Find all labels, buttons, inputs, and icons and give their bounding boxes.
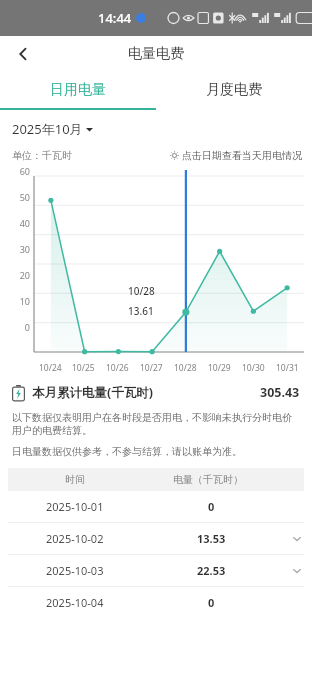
staticText: 点击日期查看当天用电情况 xyxy=(182,149,302,162)
staticText: 13.61 xyxy=(128,304,154,318)
staticText: 10/28 xyxy=(174,362,197,374)
staticText: 单位：千瓦时 xyxy=(12,149,72,162)
staticText: 10 xyxy=(19,295,30,307)
staticText: 22.53 xyxy=(197,563,226,578)
staticText: 40 xyxy=(19,217,30,229)
staticText: 2025年10月 xyxy=(12,120,83,138)
staticText: 电量（千瓦时） xyxy=(173,473,243,486)
staticText: 0 xyxy=(24,321,30,333)
button[interactable]: 2025-10-04 xyxy=(0,587,312,618)
staticText: 2025-10-02 xyxy=(46,531,104,546)
button[interactable]: Back xyxy=(6,37,40,71)
staticText: 月度电费 xyxy=(206,81,262,99)
staticText: 10/25 xyxy=(72,362,95,374)
staticText: 2025-10-03 xyxy=(46,563,104,578)
staticText: 14:44 xyxy=(98,9,132,27)
staticText: 20 xyxy=(19,269,30,281)
staticText: 60 xyxy=(19,165,30,177)
staticText: 0 xyxy=(208,499,215,514)
staticText: 30 xyxy=(19,243,30,255)
staticText: 本月累计电量(千瓦时) xyxy=(32,384,153,401)
staticText: 305.43 xyxy=(260,384,300,401)
staticText: 10/28 xyxy=(128,284,155,298)
button[interactable]: 2025年10月 xyxy=(12,120,93,138)
staticText: 电量电费 xyxy=(128,45,184,63)
staticText: 10/31 xyxy=(276,362,299,374)
button[interactable]: 2025-10-01 xyxy=(0,491,312,522)
button[interactable]: 2025-10-03 xyxy=(0,555,312,586)
staticText: 2025-10-04 xyxy=(46,595,104,610)
button[interactable]: 本月累计电量(千瓦时) xyxy=(12,384,300,401)
staticText: 2025-10-01 xyxy=(46,499,104,514)
staticText: 0 xyxy=(208,595,215,610)
staticText: 10/27 xyxy=(140,362,163,374)
staticText: 13.53 xyxy=(197,531,226,546)
button[interactable]: 月度电费 xyxy=(156,72,312,108)
staticText: 10/29 xyxy=(208,362,231,374)
staticText: 时间 xyxy=(65,473,85,486)
button[interactable]: 2025-10-02 xyxy=(0,523,312,554)
staticText: 日用电量 xyxy=(50,81,106,99)
staticText: 日电量数据仅供参考，不参与结算，请以账单为准。 xyxy=(12,445,242,458)
staticText: 以下数据仅表明用户在各时段是否用电，不影响未执行分时电价用户的电费结算。 xyxy=(12,411,300,437)
staticText: 10/24 xyxy=(39,362,62,374)
staticText: 10/26 xyxy=(106,362,129,374)
staticText: 10/30 xyxy=(242,362,265,374)
button[interactable]: 日用电量 xyxy=(0,72,156,108)
staticText: 50 xyxy=(19,191,30,203)
